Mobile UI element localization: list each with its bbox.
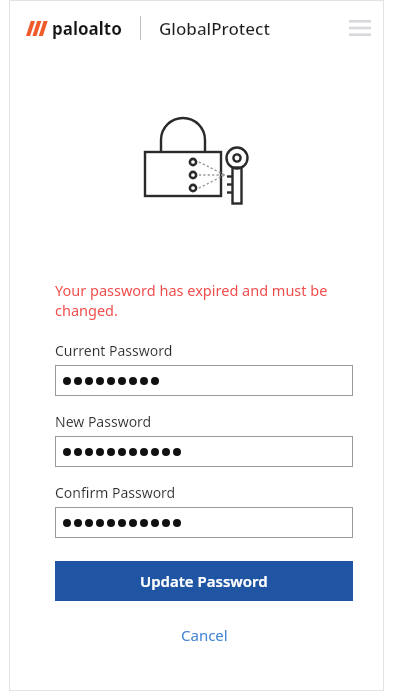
button[interactable]: [55, 365, 353, 396]
staticText: Cancel: [181, 625, 228, 645]
staticText: Your password has expired and must be ch…: [55, 280, 353, 321]
staticText: Confirm Password: [55, 483, 176, 502]
button[interactable]: [55, 436, 353, 467]
button[interactable]: Cancel: [171, 623, 238, 647]
staticText: GlobalProtect: [159, 17, 270, 40]
button[interactable]: Menu: [345, 13, 375, 43]
staticText: Update Password: [140, 571, 268, 591]
staticText: paloalto: [52, 17, 122, 40]
staticText: Current Password: [55, 341, 173, 360]
button[interactable]: Update Password: [55, 561, 353, 601]
staticText: New Password: [55, 412, 152, 431]
button[interactable]: [55, 507, 353, 538]
